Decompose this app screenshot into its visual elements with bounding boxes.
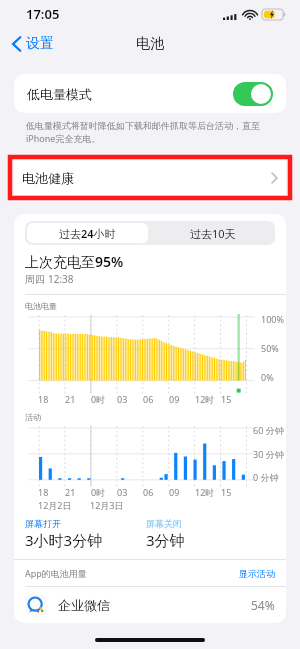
staticText: 12:38 [48, 272, 74, 286]
staticText: 0 分钟 [253, 471, 279, 483]
staticText: 0% [261, 371, 274, 383]
staticText: 54% [251, 597, 275, 613]
staticText: 50% [261, 342, 279, 354]
button[interactable]: 低电量模式 [14, 74, 286, 113]
staticText: 18 [38, 393, 49, 405]
button[interactable]: 过去24小时 [27, 223, 148, 243]
staticText: 09 [169, 393, 180, 405]
staticText: 3小时3分钟 [25, 530, 103, 550]
staticText: 12时 [195, 393, 215, 405]
staticText: 17:05 [26, 5, 60, 23]
staticText: 60 分钟 [253, 424, 284, 436]
button[interactable]: 设置 [9, 32, 57, 56]
staticText: 企业微信 [58, 597, 110, 613]
staticText: 18 [38, 486, 49, 498]
button[interactable]: 电池健康 [14, 160, 286, 195]
button[interactable]: Low Power Mode toggle [233, 82, 273, 106]
staticText: 低电量模式将暂时降低如下载和邮件抓取等后台活动，直至 [26, 120, 260, 131]
staticText: 03 [117, 393, 128, 405]
staticText: 3分钟 [146, 530, 185, 550]
staticText: 0时 [91, 393, 106, 405]
staticText: iPhone完全充电。 [26, 132, 101, 144]
button[interactable]: 企业微信 [14, 587, 286, 623]
staticText: 过去10天 [190, 226, 236, 241]
staticText: 过去24小时 [59, 226, 116, 241]
staticText: 12时 [195, 486, 215, 498]
staticText: 09 [169, 486, 180, 498]
staticText: 03 [117, 486, 128, 498]
staticText: 设置 [26, 35, 54, 53]
staticText: 活动 [25, 412, 41, 422]
staticText: 电池 [136, 35, 164, 53]
staticText: 屏幕关闭 [146, 518, 182, 529]
button[interactable]: 显示活动 [239, 568, 275, 579]
staticText: 12月3日 [90, 499, 124, 511]
staticText: 周四 [25, 272, 48, 286]
button[interactable]: 过去10天 [150, 221, 275, 245]
staticText: 屏幕打开 [25, 518, 61, 529]
staticText: 15 [221, 393, 232, 405]
staticText: 100% [261, 313, 284, 325]
staticText: 21 [65, 393, 76, 405]
staticText: 显示活动 [239, 568, 275, 579]
staticText: 12月2日 [38, 499, 72, 511]
staticText: 电池健康 [22, 170, 74, 186]
staticText: App的电池用量 [25, 567, 87, 579]
staticText: 上次充电至95% [25, 252, 124, 271]
staticText: 21 [65, 486, 76, 498]
staticText: 06 [143, 486, 154, 498]
staticText: 0时 [91, 486, 106, 498]
staticText: 15 [221, 486, 232, 498]
staticText: 30 分钟 [253, 448, 284, 460]
staticText: 低电量模式 [27, 86, 92, 102]
staticText: 06 [143, 393, 154, 405]
staticText: 电池电量 [25, 301, 57, 311]
